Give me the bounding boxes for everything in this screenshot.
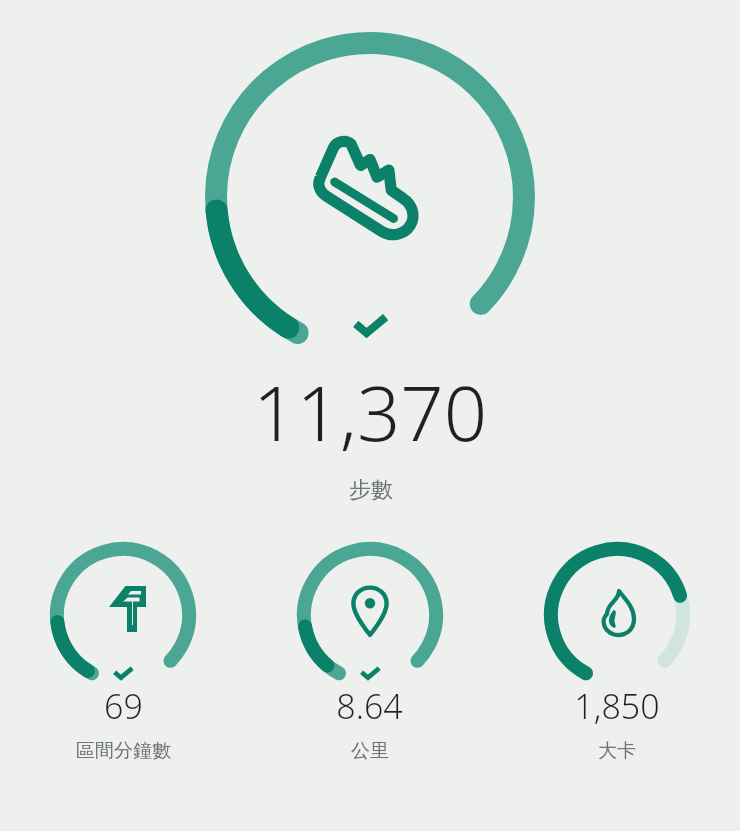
staticText: 區間分鐘數 — [76, 739, 171, 763]
staticText: 8.64 — [336, 683, 403, 729]
staticText: 步數 — [349, 476, 393, 504]
staticText: 大卡 — [598, 739, 636, 763]
button[interactable]: Distance 8.64 kilometres — [246, 533, 493, 763]
button[interactable]: Steps ring 11,370 steps — [185, 12, 555, 357]
staticText: 11,370 — [253, 360, 488, 464]
button[interactable]: 11,370 — [0, 360, 740, 504]
button[interactable]: Zone minutes 69 — [0, 533, 246, 763]
staticText: 公里 — [351, 739, 389, 763]
button[interactable]: Calories 1,850 kcal — [493, 533, 740, 763]
staticText: 69 — [104, 683, 143, 729]
staticText: 1,850 — [574, 683, 660, 729]
